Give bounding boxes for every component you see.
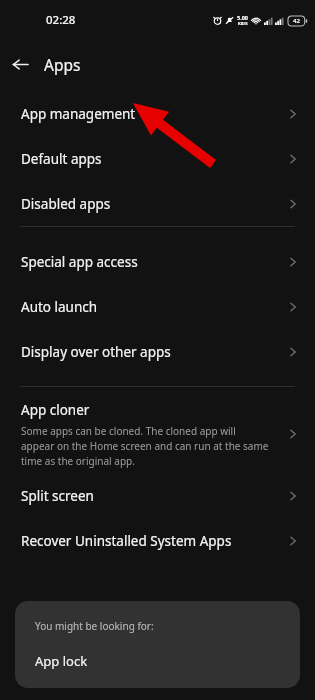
staticText: Some apps can be cloned. The cloned app … xyxy=(21,424,271,468)
staticText: Disabled apps xyxy=(21,195,111,213)
button[interactable]: You might be looking for: xyxy=(15,601,300,688)
button[interactable]: Recover Uninstalled System Apps xyxy=(0,518,315,563)
staticText: Display over other apps xyxy=(21,343,171,361)
button[interactable]: Auto launch xyxy=(0,284,315,329)
staticText: Special app access xyxy=(21,253,138,271)
button[interactable]: Default apps xyxy=(0,136,315,181)
button[interactable]: Disabled apps xyxy=(0,181,315,226)
staticText: 42 xyxy=(293,17,300,25)
staticText: App lock xyxy=(35,652,88,670)
button[interactable]: App management xyxy=(0,92,315,136)
staticText: Default apps xyxy=(21,150,102,168)
staticText: Recover Uninstalled System Apps xyxy=(21,532,232,550)
staticText: Split screen xyxy=(21,487,94,505)
button[interactable]: Display over other apps xyxy=(0,329,315,374)
staticText: 5.00 xyxy=(237,14,248,21)
staticText: App management xyxy=(21,105,136,123)
staticText: App cloner xyxy=(21,401,90,419)
staticText: Auto launch xyxy=(21,298,98,316)
staticText: KB/S xyxy=(238,21,248,27)
staticText: Apps xyxy=(44,54,81,75)
staticText: You might be looking for: xyxy=(35,619,154,633)
staticText: 02:28 xyxy=(46,12,76,28)
button[interactable]: Special app access xyxy=(0,239,315,284)
button[interactable]: Back xyxy=(0,44,40,84)
button[interactable]: App cloner xyxy=(0,395,315,473)
button[interactable]: Split screen xyxy=(0,473,315,518)
